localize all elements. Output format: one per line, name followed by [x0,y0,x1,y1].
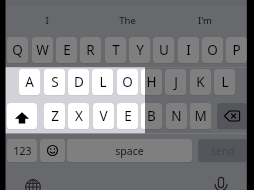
staticText: space [115,144,144,158]
button[interactable]: L [214,69,235,95]
staticText: O [207,41,218,59]
button[interactable]: H [141,69,162,95]
button[interactable]: Q [7,37,28,63]
staticText: W [36,41,49,59]
button[interactable]: D [68,69,89,95]
button[interactable]: V [93,103,114,129]
button[interactable]: U [153,37,174,63]
staticText: I [186,41,191,59]
button[interactable]: E [117,103,138,129]
staticText: O [122,73,133,91]
staticText: 123 [13,144,32,158]
staticText: V [99,107,108,125]
staticText: U [159,41,169,59]
staticText: S [51,73,59,91]
staticText: T [112,41,120,59]
staticText: L [221,73,229,91]
staticText: I [45,14,49,27]
staticText: K [196,73,205,91]
staticText: send [211,144,235,158]
staticText: B [147,107,156,125]
button[interactable]: N [166,103,187,129]
button[interactable]: Z [44,103,65,129]
staticText: The [119,14,136,27]
button[interactable]: L [92,69,113,95]
button[interactable]: Backspace [217,103,247,129]
button[interactable]: Switch keyboard [25,179,41,190]
button[interactable]: space [67,139,192,162]
button[interactable]: Dictate [214,176,228,190]
button[interactable]: O [117,69,138,95]
staticText: Y [136,41,144,59]
button[interactable]: M [190,103,211,129]
button[interactable]: send [198,139,247,162]
staticText: P [232,41,241,59]
button[interactable]: J [165,69,186,95]
staticText: R [86,41,95,59]
button[interactable]: A [19,69,40,95]
button[interactable]: Shift [7,103,37,129]
button[interactable]: T [105,37,126,63]
staticText: N [171,107,182,125]
button[interactable]: Numbers [7,139,37,162]
button[interactable]: X [68,103,89,129]
button[interactable]: S [44,69,65,95]
button[interactable]: Emoji [40,139,65,162]
staticText: D [74,73,84,91]
button[interactable]: I'm [175,8,235,32]
staticText: E [63,41,71,59]
staticText: J [174,73,178,91]
staticText: E [124,107,132,125]
button[interactable]: W [32,37,53,63]
button[interactable]: The [97,8,157,32]
button[interactable]: I [17,8,77,32]
staticText: M [194,107,207,125]
button[interactable]: E [56,37,77,63]
staticText: L [99,73,107,91]
button[interactable]: Y [129,37,150,63]
button[interactable]: R [80,37,101,63]
button[interactable]: B [141,103,162,129]
staticText: X [75,107,83,125]
button[interactable]: K [190,69,211,95]
button[interactable]: O [202,37,223,63]
button[interactable]: P [226,37,247,63]
staticText: Z [51,107,59,125]
button[interactable]: I [178,37,199,63]
staticText: I'm [198,14,212,27]
staticText: A [25,73,34,91]
staticText: H [146,73,157,91]
staticText: Q [12,41,23,59]
